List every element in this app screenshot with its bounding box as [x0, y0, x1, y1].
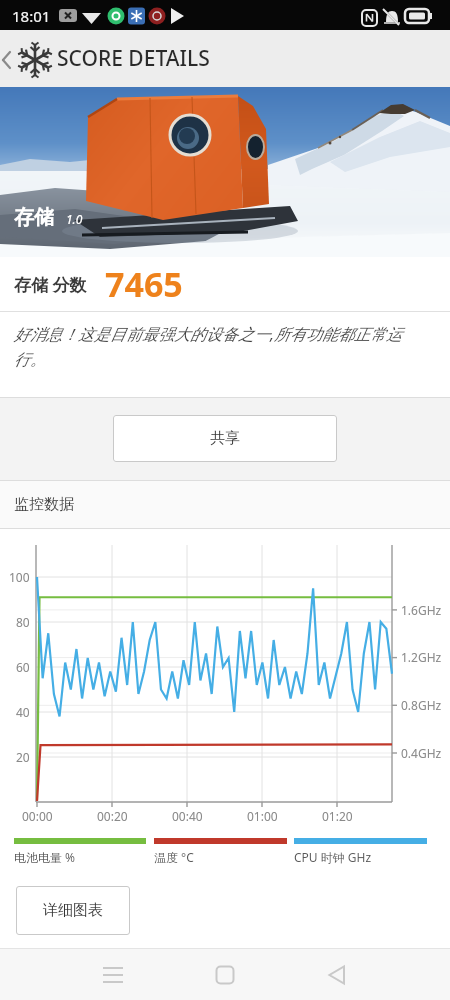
staticText: 20	[16, 749, 30, 765]
staticText: 80	[16, 614, 30, 630]
staticText: 存储 分数	[14, 273, 87, 296]
staticText: CPU 时钟 GHz	[294, 849, 372, 865]
button[interactable]	[200, 950, 249, 999]
staticText: 00:00	[22, 808, 53, 824]
staticText: 100	[9, 569, 30, 585]
staticText: 0.4GHz	[401, 745, 442, 761]
button[interactable]: 共享	[113, 415, 337, 462]
staticText: SCORE DETAILS	[57, 44, 210, 73]
staticText: 40	[16, 704, 30, 720]
staticText: 1.0	[66, 211, 83, 227]
staticText: 7465	[105, 261, 183, 307]
staticText: 18:01	[12, 6, 51, 26]
staticText: 01:20	[322, 808, 353, 824]
staticText: 1.6GHz	[401, 602, 442, 618]
staticText: 存储	[14, 205, 54, 230]
button[interactable]	[88, 950, 137, 999]
staticText: 监控数据	[14, 495, 74, 514]
staticText: 00:40	[172, 808, 203, 824]
staticText: 电池电量 %	[14, 849, 76, 865]
staticText: 共享	[210, 429, 240, 448]
staticText: 1.2GHz	[401, 649, 442, 665]
button[interactable]	[312, 950, 361, 999]
staticText: 好消息！这是目前最强大的设备之一,所有功能都正常运行。	[14, 323, 426, 369]
staticText: 温度 °C	[154, 849, 194, 865]
staticText: 01:00	[247, 808, 278, 824]
staticText: 0.8GHz	[401, 697, 442, 713]
staticText: 详细图表	[43, 901, 103, 920]
staticText: 00:20	[97, 808, 128, 824]
button[interactable]: 详细图表	[16, 886, 130, 935]
button[interactable]: SCORE DETAILS	[0, 30, 209, 87]
staticText: 60	[16, 659, 30, 675]
